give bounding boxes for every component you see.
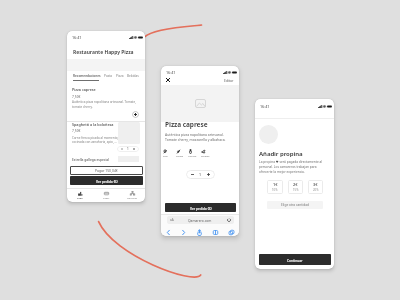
button[interactable]: Opciones [119, 189, 145, 202]
button[interactable]: Pizza [116, 74, 124, 78]
staticText: 1€ [273, 182, 278, 187]
staticText: Auténtica pizza napolitana artesanal. To… [72, 100, 142, 108]
staticText: 16:41 [166, 70, 176, 75]
button[interactable]: Pedir [67, 189, 93, 202]
button[interactable]: Back [161, 228, 176, 236]
staticText: Ver pedido (5) [96, 179, 118, 183]
staticText: Recomendaciones [73, 74, 101, 78]
staticText: 15% [293, 188, 299, 192]
staticText: Soja [163, 155, 168, 158]
button[interactable]: 2€ [288, 180, 303, 194]
staticText: Continuar [287, 258, 303, 262]
staticText: 7,50€ [72, 94, 81, 98]
staticText: Estrella gallega especial [72, 157, 110, 161]
staticText: Carne fresca picada al momento, cocinada… [72, 136, 119, 144]
button[interactable]: Sesamo [201, 149, 210, 158]
staticText: Gluten [176, 155, 184, 158]
button[interactable]: Ver pedido (3) [165, 203, 236, 212]
staticText: Añadir propina [259, 150, 303, 158]
button[interactable]: 3€ [308, 180, 323, 194]
staticText: Pizza caprese [165, 120, 208, 129]
staticText: 1 [127, 147, 129, 151]
button[interactable]: Increase quantity [205, 171, 212, 178]
button[interactable]: Share [191, 228, 207, 236]
button[interactable]: Pagar [93, 189, 119, 202]
staticText: 3€ [313, 182, 318, 187]
staticText: 16:41 [72, 35, 82, 40]
staticText: Pagar 150,04€ [95, 168, 118, 173]
button[interactable]: Bebidas [127, 74, 139, 78]
button[interactable]: Soja [163, 149, 168, 158]
staticText: 10% [272, 188, 278, 192]
staticText: 2€ [293, 182, 298, 187]
staticText: Lactosa [188, 155, 197, 158]
button[interactable]: aA [170, 216, 231, 224]
button[interactable]: Decrease quantity [189, 171, 196, 178]
button[interactable]: Ver pedido (5) [70, 176, 143, 185]
staticText: Restaurante Happy Pizza [73, 49, 134, 56]
button[interactable]: Continuar [259, 254, 331, 265]
button[interactable]: Bookmarks [207, 228, 223, 236]
staticText: Sesamo [201, 155, 210, 158]
button[interactable]: Decrease quantity [119, 146, 125, 152]
button[interactable]: Forward [176, 228, 191, 236]
staticText: Auténtica pizza napolitana artesanal. To… [165, 132, 226, 142]
staticText: Opciones [127, 197, 138, 200]
staticText: Spaghetti a la boloñesa [72, 122, 114, 127]
button[interactable]: Increase quantity [131, 146, 137, 152]
staticText: Pagar [103, 197, 110, 200]
staticText: Elige otra cantidad [281, 203, 309, 207]
staticText: Pizza caprese [72, 87, 96, 92]
staticText: 16:41 [260, 104, 270, 109]
button[interactable]: Add item [132, 111, 139, 118]
button[interactable]: 1€ [267, 180, 283, 194]
button[interactable]: Recomendaciones [73, 74, 101, 81]
staticText: Qamarero.com [188, 218, 212, 222]
staticText: 1 [199, 172, 202, 177]
staticText: Pedir [77, 197, 83, 200]
staticText: Ver pedido (3) [190, 206, 212, 210]
staticText: 7,50€ [72, 128, 81, 132]
button[interactable]: Gluten [176, 149, 184, 158]
staticText: aA [170, 218, 174, 222]
button[interactable]: Close [164, 76, 172, 84]
staticText: 20% [313, 188, 319, 192]
staticText: La propina ♥ será pagada directamente al… [259, 160, 331, 174]
button[interactable]: Tabs [223, 228, 239, 236]
button[interactable]: Lactosa [188, 149, 197, 158]
button[interactable]: Pasta [104, 74, 113, 78]
button[interactable]: Editar [224, 78, 234, 83]
button[interactable]: Pagar 150,04€ [70, 166, 143, 175]
button[interactable]: Elige otra cantidad [267, 201, 323, 209]
